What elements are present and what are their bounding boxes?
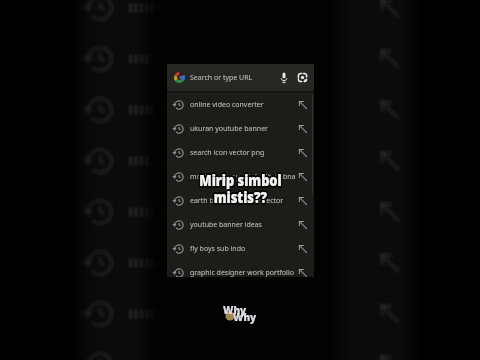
staticText: most popular youtube thumbnail (190, 172, 295, 182)
staticText: Mirip simbol (198, 170, 280, 192)
staticText: online video converter (190, 100, 264, 110)
button[interactable]: Voice search (274, 68, 293, 87)
staticText: Mirip simbol (198, 167, 281, 189)
button[interactable]: Search with Google Lens (293, 68, 312, 87)
staticText: mistis?? (212, 186, 266, 208)
staticText: mistis?? (215, 186, 269, 208)
staticText: mistis?? (215, 187, 269, 209)
button[interactable]: youtube banner ideas (167, 213, 314, 237)
staticText: Mirip simbol (199, 168, 282, 190)
staticText: graphic designer work portfolio (190, 268, 294, 277)
staticText: Mirip simbol (198, 171, 281, 193)
button[interactable]: search icon vector png (167, 141, 314, 165)
button[interactable]: graphic designer work portfolio (167, 261, 314, 277)
staticText: mistis?? (215, 185, 269, 207)
staticText: Why (233, 310, 257, 324)
staticText: mistis?? (214, 184, 267, 206)
staticText: mistis?? (212, 185, 266, 207)
staticText: ukuran youtube banner (190, 124, 268, 134)
staticText: Mirip simbol (201, 169, 283, 191)
staticText: mistis?? (214, 186, 268, 208)
button[interactable]: most popular youtube thumbnail (167, 165, 314, 189)
staticText: Mirip simbol (200, 168, 282, 190)
staticText: Mirip simbol (199, 167, 282, 189)
staticText: mistis?? (212, 187, 266, 209)
staticText: Mirip simbol (201, 170, 283, 192)
staticText: mistis?? (214, 187, 267, 209)
button[interactable]: ukuran youtube banner (167, 117, 314, 141)
staticText: Mirip simbol (200, 167, 282, 189)
staticText: search icon vector png (190, 148, 265, 158)
staticText: Mirip simbol (201, 168, 283, 190)
staticText: earth black and white vector (190, 196, 284, 206)
staticText: mistis?? (214, 187, 268, 209)
staticText: Mirip simbol (200, 170, 282, 192)
staticText: Mirip simbol (198, 168, 280, 190)
staticText: mistis?? (213, 184, 266, 206)
staticText: Mirip simbol (198, 170, 281, 192)
staticText: Mirip simbol (198, 169, 281, 191)
button[interactable]: online video converter (167, 93, 314, 117)
button[interactable]: earth black and white vector (167, 189, 314, 213)
staticText: Mirip simbol (198, 168, 281, 190)
button[interactable]: fly boys sub indo (167, 237, 314, 261)
staticText: Mirip simbol (200, 169, 282, 191)
staticText: mistis?? (214, 186, 267, 208)
staticText: mistis?? (213, 186, 266, 208)
staticText: mistis?? (214, 185, 268, 207)
staticText: mistis?? (213, 187, 266, 209)
staticText: Mirip simbol (199, 169, 282, 191)
staticText: mistis?? (214, 188, 267, 210)
staticText: Search or type URL (190, 73, 253, 83)
staticText: mistis?? (213, 188, 266, 210)
staticText: mistis?? (214, 184, 268, 206)
staticText: mistis?? (213, 185, 266, 207)
staticText: Mirip simbol (199, 170, 282, 192)
staticText: fly boys sub indo (190, 244, 246, 254)
staticText: mistis?? (214, 188, 268, 210)
button[interactable]: Search or type URL (167, 64, 314, 91)
staticText: Mirip simbol (200, 171, 282, 193)
staticText: mistis?? (214, 185, 267, 207)
staticText: Mirip simbol (198, 169, 280, 191)
staticText: Mirip simbol (199, 171, 282, 193)
staticText: youtube banner ideas (190, 220, 262, 230)
staticText: Why (223, 303, 247, 317)
